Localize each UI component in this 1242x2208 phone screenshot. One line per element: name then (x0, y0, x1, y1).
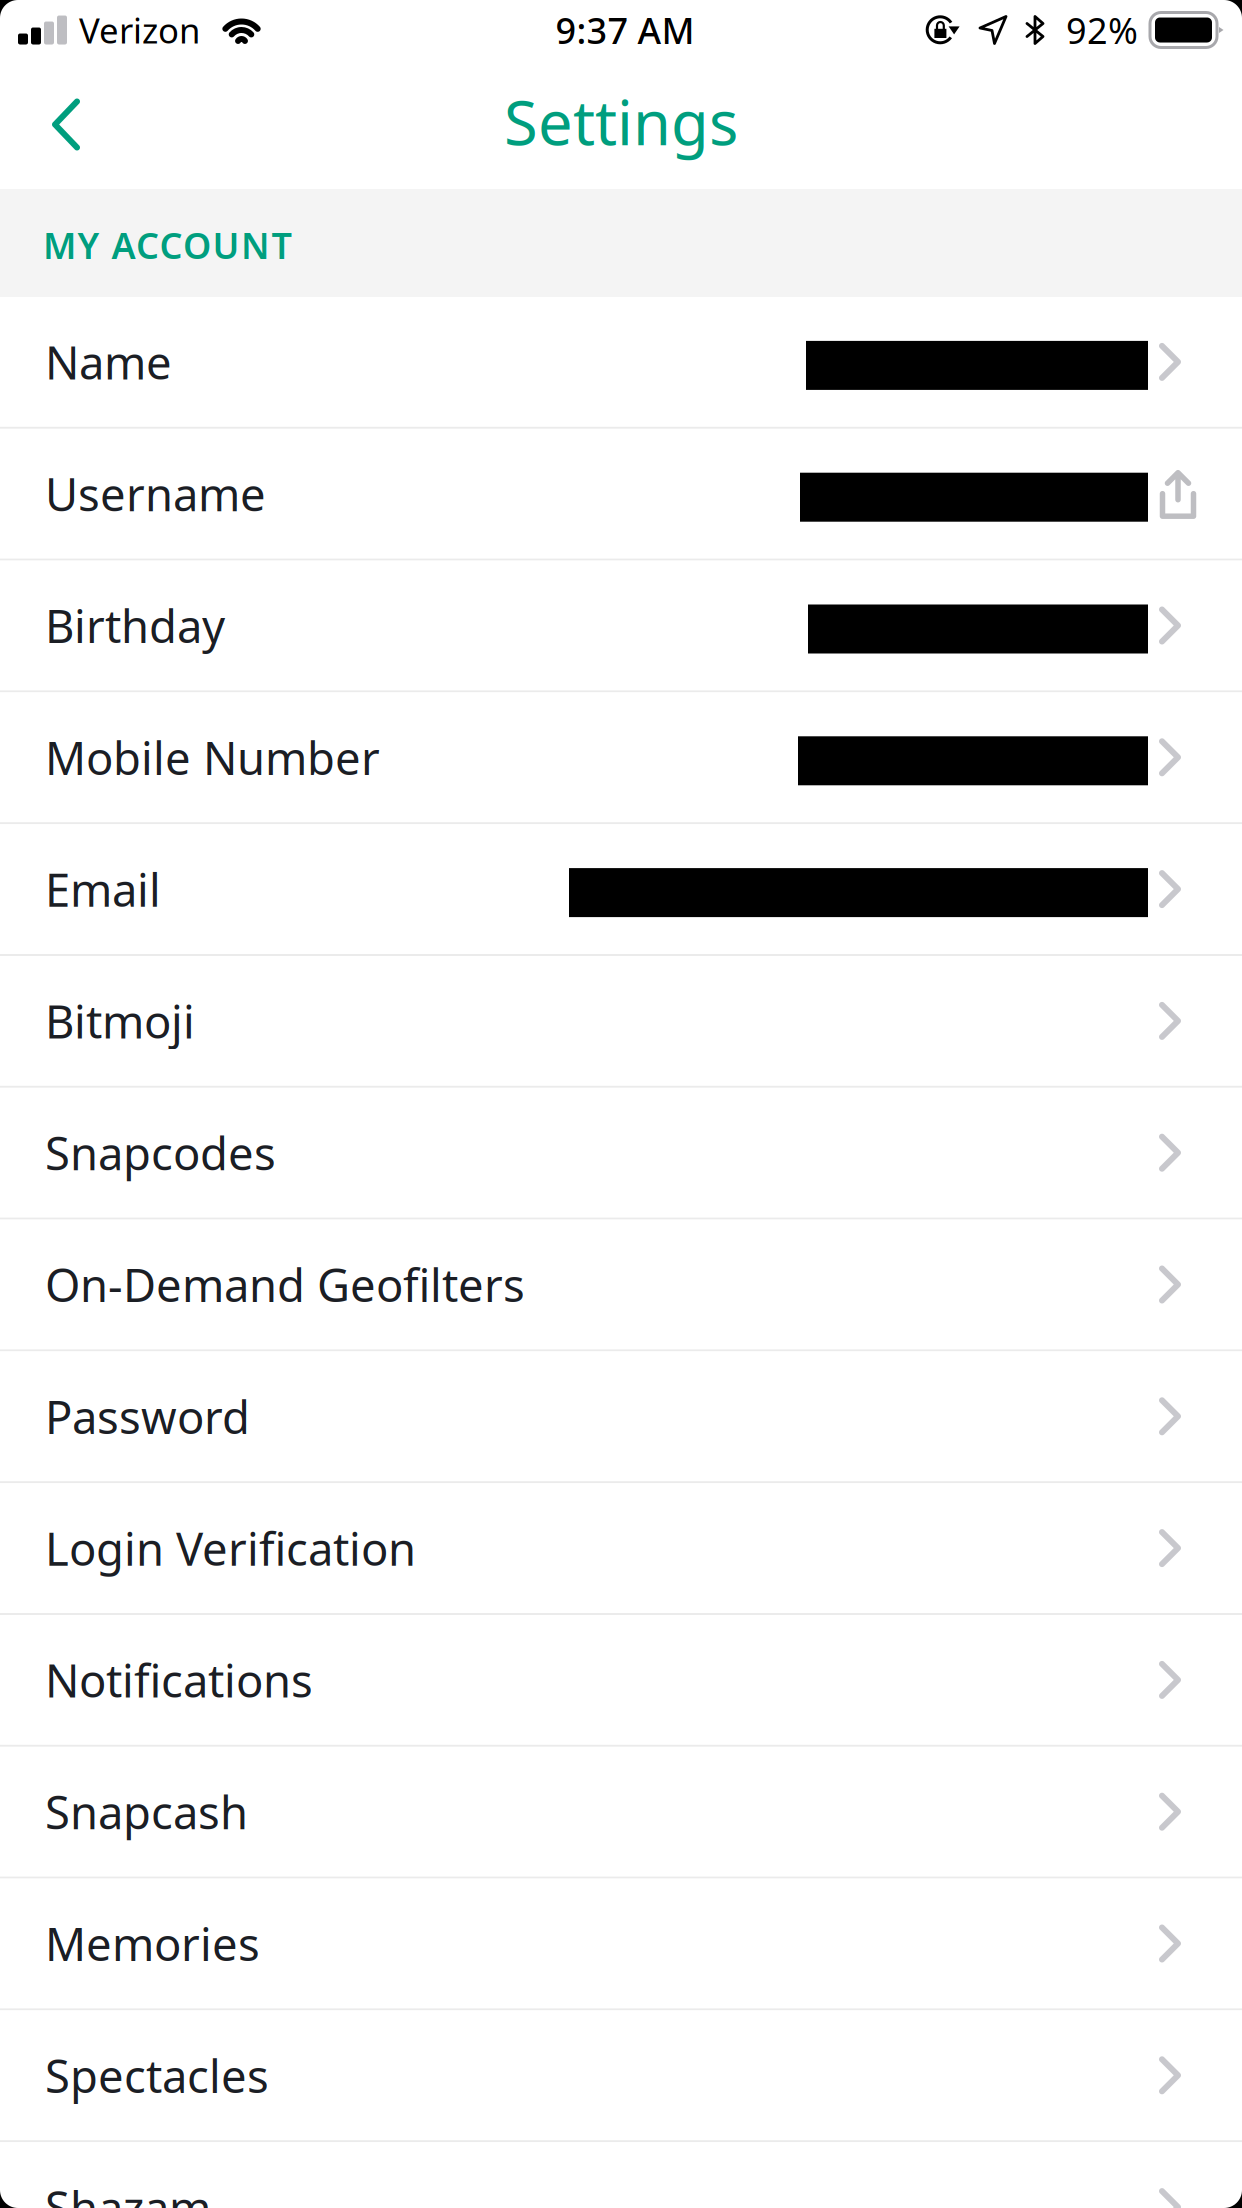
staticText: Snapcodes (45, 1123, 276, 1183)
staticText: 92% (1066, 6, 1138, 54)
staticText: Email (45, 859, 161, 919)
staticText: Mobile Number (45, 727, 380, 787)
staticText: Birthday (45, 595, 225, 656)
button[interactable]: Email (0, 824, 1242, 956)
staticText: Username (45, 464, 266, 524)
button[interactable]: Password (0, 1351, 1242, 1483)
button[interactable]: Mobile Number (0, 692, 1242, 824)
staticText: Name (45, 332, 172, 392)
staticText: Shazam (45, 2177, 211, 2208)
staticText: Snapcash (45, 1782, 248, 1842)
button[interactable]: Memories (0, 1879, 1242, 2010)
staticText: Login Verification (45, 1518, 416, 1578)
button[interactable]: Username (0, 429, 1242, 561)
button[interactable]: Birthday (0, 561, 1242, 692)
staticText: Password (45, 1386, 250, 1446)
button[interactable]: Snapcodes (0, 1088, 1242, 1220)
staticText: Verizon (79, 7, 200, 53)
button[interactable]: Spectacles (0, 2010, 1242, 2142)
button[interactable]: Name (0, 297, 1242, 429)
staticText: Notifications (45, 1650, 313, 1710)
staticText: Memories (45, 1913, 260, 1974)
button[interactable]: Notifications (0, 1615, 1242, 1747)
staticText: On-Demand Geofilters (45, 1254, 525, 1315)
button[interactable]: Shazam (0, 2142, 1242, 2208)
staticText: MY ACCOUNT (43, 221, 291, 269)
button[interactable]: Snapcash (0, 1747, 1242, 1879)
button[interactable]: Back (0, 84, 110, 164)
staticText: Spectacles (45, 2045, 269, 2105)
staticText: Bitmoji (45, 991, 195, 1051)
staticText: 9:37 AM (555, 6, 694, 54)
staticText: Settings (504, 81, 738, 162)
button[interactable]: On-Demand Geofilters (0, 1220, 1242, 1351)
button[interactable]: Login Verification (0, 1483, 1242, 1615)
button[interactable]: Bitmoji (0, 956, 1242, 1088)
